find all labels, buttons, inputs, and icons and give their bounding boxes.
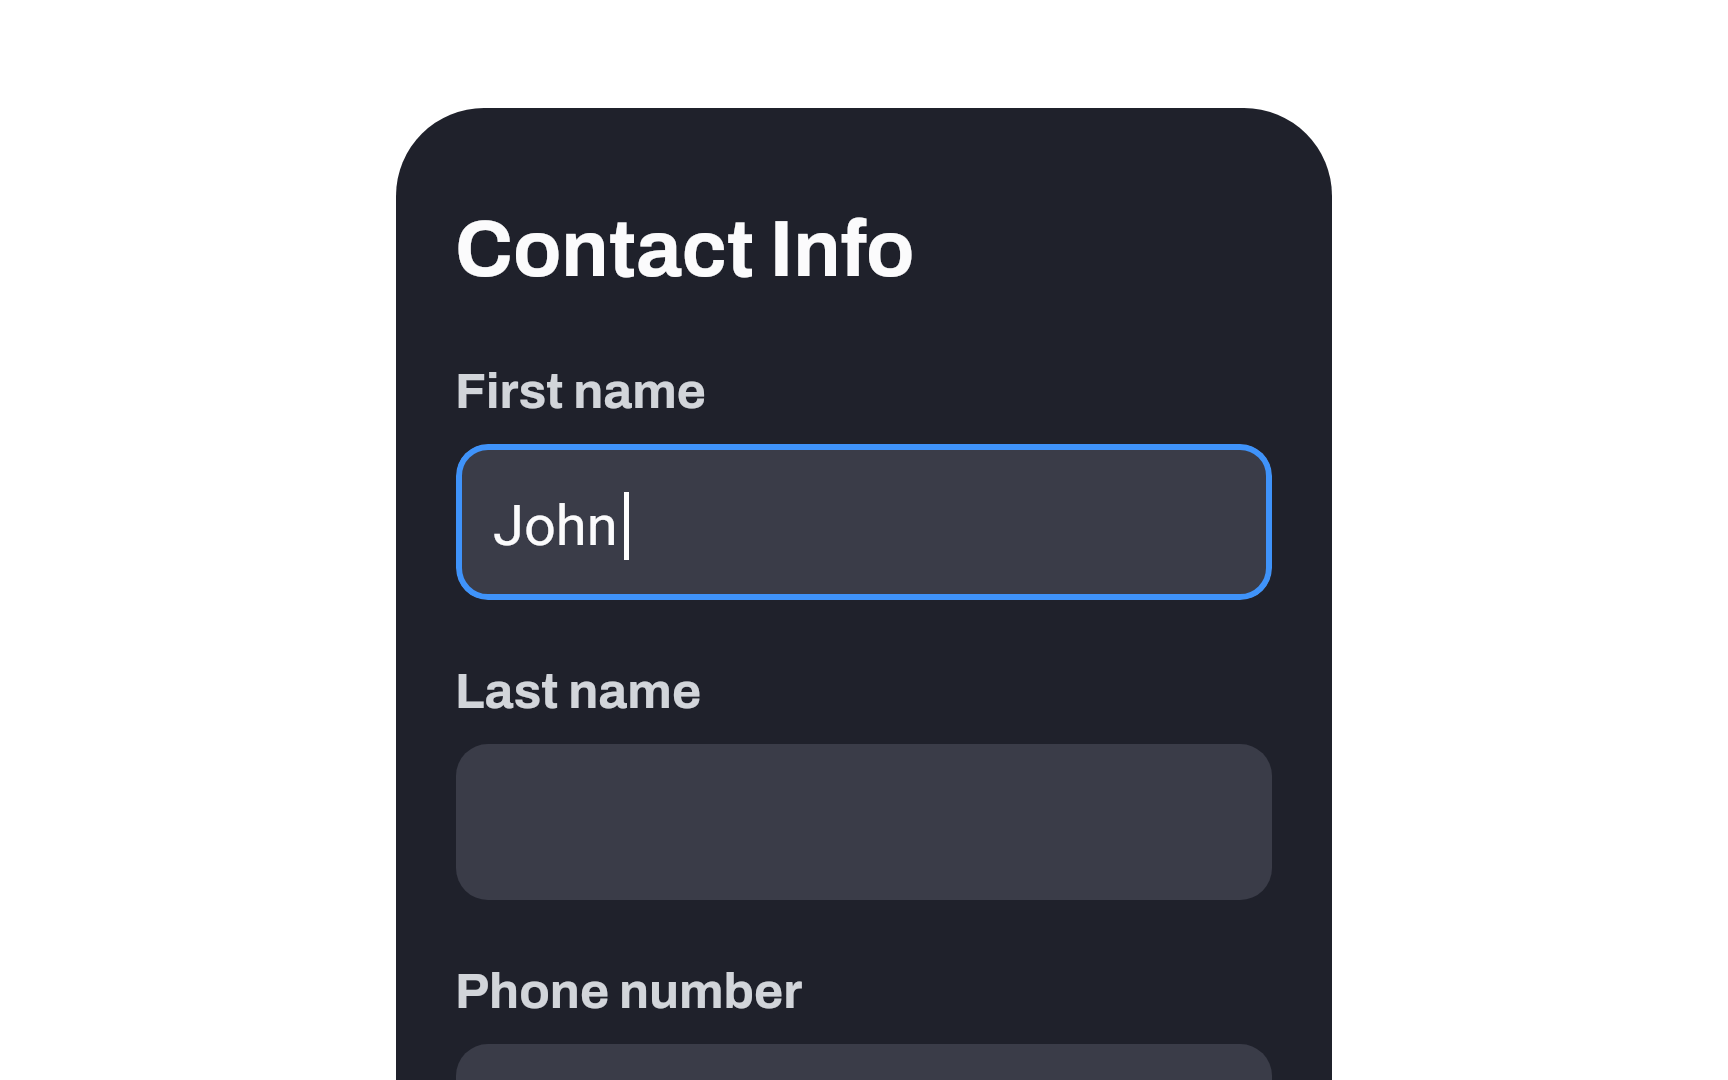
staticText: Last name: [455, 664, 702, 718]
staticText: Phone number: [455, 964, 803, 1018]
button[interactable]: Phone number: [456, 1044, 1272, 1080]
staticText: First name: [455, 364, 706, 418]
button[interactable]: First name: [456, 444, 1272, 600]
staticText: John: [493, 493, 618, 559]
staticText: Contact Info: [455, 207, 915, 293]
